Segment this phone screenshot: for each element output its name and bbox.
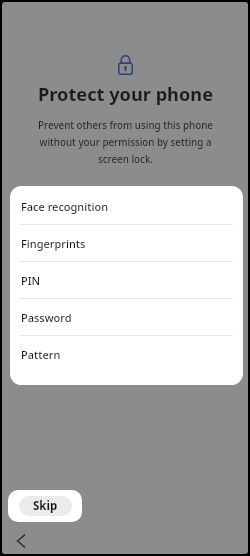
staticText: Prevent others from using this phone wit…	[38, 119, 213, 166]
staticText: Pattern	[21, 347, 61, 362]
staticText: PIN	[21, 273, 41, 288]
button[interactable]: Face recognition	[10, 188, 243, 224]
button[interactable]: Pattern	[10, 336, 243, 372]
button[interactable]: Password	[10, 299, 243, 335]
button[interactable]: Back	[8, 528, 34, 554]
staticText: Fingerprints	[21, 236, 86, 251]
button[interactable]: Skip	[19, 496, 72, 516]
button[interactable]: Fingerprints	[10, 225, 243, 261]
button[interactable]: Skip	[8, 490, 82, 522]
staticText: Protect your phone	[38, 82, 213, 107]
staticText: Password	[21, 310, 72, 325]
button[interactable]: PIN	[10, 262, 243, 298]
staticText: Skip	[33, 498, 58, 514]
staticText: Face recognition	[21, 199, 109, 214]
